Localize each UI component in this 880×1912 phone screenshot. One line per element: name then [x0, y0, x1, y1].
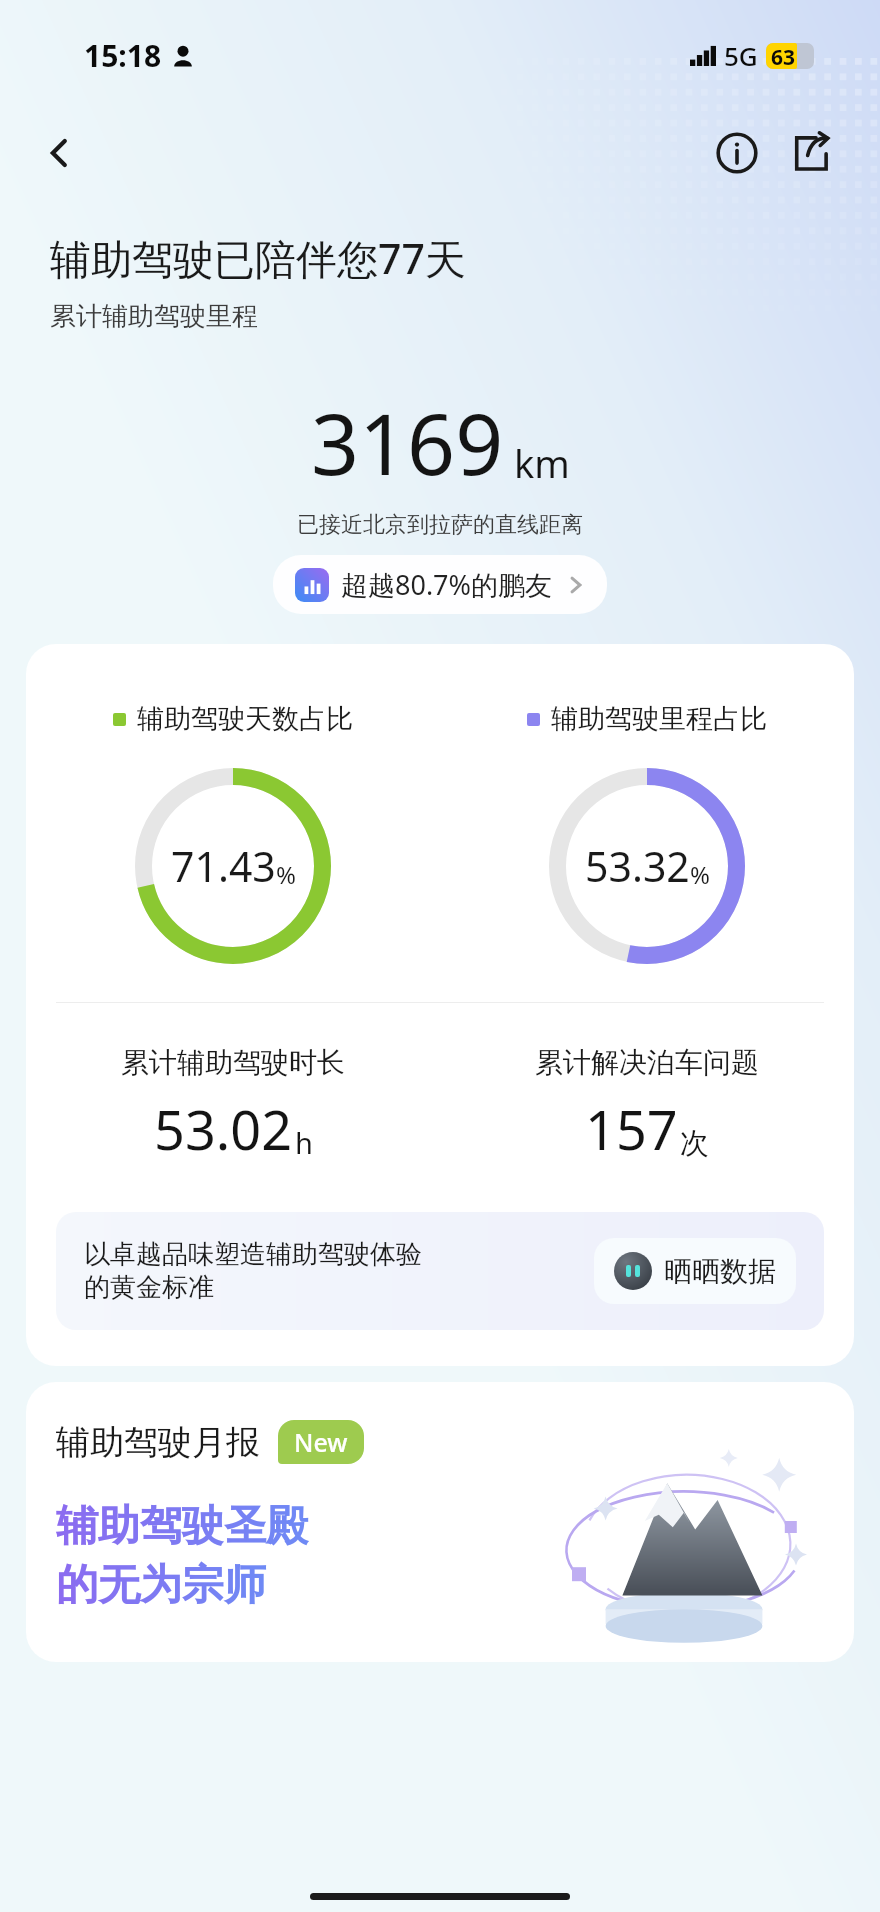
button[interactable]: 晒晒数据	[594, 1238, 796, 1304]
staticText: 的无为宗师	[56, 1559, 266, 1612]
button[interactable]: 超越80.7%的鹏友	[273, 555, 607, 614]
staticText: 已接近北京到拉萨的直线距离	[0, 511, 880, 539]
staticText: 53.02	[154, 1092, 293, 1166]
button[interactable]: 辅助驾驶月报	[26, 1382, 854, 1662]
staticText: 15:18	[84, 35, 162, 76]
staticText: 辅助驾驶月报	[56, 1421, 260, 1464]
staticText: New	[294, 1425, 348, 1459]
staticText: 辅助驾驶天数占比	[137, 702, 353, 736]
staticText: 累计辅助驾驶时长	[121, 1045, 345, 1080]
staticText: h	[295, 1123, 313, 1162]
staticText: 53.32	[585, 838, 690, 894]
staticText: 157	[585, 1092, 678, 1166]
staticText: 5G	[724, 38, 758, 73]
staticText: 超越80.7%的鹏友	[341, 566, 553, 603]
staticText: 71.43	[171, 838, 276, 894]
staticText: 次	[680, 1125, 709, 1162]
staticText: %	[690, 858, 710, 891]
staticText: 累计辅助驾驶里程	[50, 300, 258, 333]
button[interactable]: Info	[708, 124, 766, 182]
staticText: 辅助驾驶里程占比	[551, 702, 767, 736]
staticText: 辅助驾驶已陪伴您77天	[50, 230, 466, 286]
staticText: 累计解决泊车问题	[535, 1045, 759, 1080]
staticText: 晒晒数据	[664, 1254, 776, 1289]
staticText: 的黄金标准	[84, 1271, 214, 1304]
button[interactable]: Back	[32, 125, 88, 181]
button[interactable]: Share	[782, 124, 840, 182]
staticText: 辅助驾驶圣殿	[56, 1500, 308, 1553]
staticText: 以卓越品味塑造辅助驾驶体验	[84, 1238, 422, 1271]
staticText: 63	[771, 43, 796, 69]
staticText: %	[276, 858, 296, 891]
staticText: km	[514, 437, 570, 489]
staticText: 3169	[311, 385, 504, 499]
